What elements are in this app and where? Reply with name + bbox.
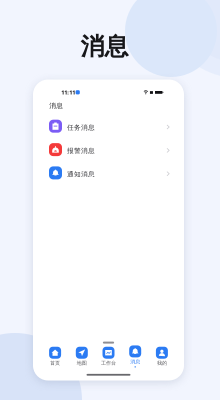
button[interactable]: 通知消息	[33, 163, 184, 182]
staticText: 报警消息	[67, 147, 95, 155]
staticText: 首页	[50, 360, 60, 366]
staticText: 任务消息	[67, 123, 95, 132]
button[interactable]: 首页	[42, 345, 68, 367]
staticText: 地图	[77, 360, 87, 366]
staticText: 我的	[157, 360, 167, 366]
button[interactable]: 消息	[122, 345, 148, 367]
staticText: 消息	[130, 359, 140, 365]
button[interactable]: 我的	[149, 345, 175, 367]
staticText: 通知消息	[67, 170, 95, 178]
staticText: 消息	[49, 101, 63, 110]
button[interactable]: 地图	[68, 345, 95, 367]
staticText: 工作台	[101, 360, 116, 366]
button[interactable]: 报警消息	[33, 140, 184, 159]
button[interactable]: 任务消息	[33, 117, 184, 136]
staticText: 11:11	[61, 88, 75, 96]
button[interactable]: 工作台	[95, 345, 122, 367]
staticText: 消息	[80, 31, 128, 62]
